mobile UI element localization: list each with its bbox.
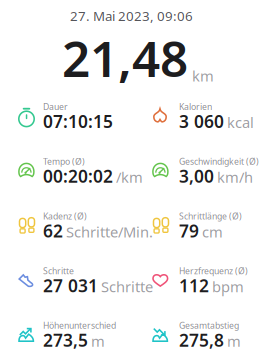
staticText: Schritte (43, 265, 74, 277)
staticText: 273,5 (43, 329, 88, 352)
staticText: 00:20:02 (43, 164, 113, 187)
staticText: 21,48 (62, 25, 188, 90)
staticText: Schritte/Min. (66, 222, 153, 241)
staticText: 27 031 (43, 274, 98, 297)
staticText: Kadenz (Ø) (43, 210, 87, 222)
staticText: kcal (227, 113, 254, 132)
staticText: 27. Mai 2023, 09:06 (70, 7, 193, 25)
staticText: Schrittlänge (Ø) (179, 210, 242, 222)
staticText: 275,8 (179, 329, 224, 352)
staticText: 07:10:15 (43, 110, 113, 133)
staticText: Tempo (Ø) (43, 155, 85, 167)
staticText: 112 (179, 274, 209, 297)
staticText: 62 (43, 219, 63, 242)
staticText: Gesamtabstieg (179, 320, 239, 331)
staticText: km (192, 66, 214, 85)
staticText: Kalorien (179, 101, 212, 113)
staticText: Schritte (101, 277, 153, 296)
staticText: bpm (212, 277, 244, 296)
staticText: 3 060 (179, 110, 224, 133)
staticText: 79 (179, 219, 199, 242)
staticText: cm (202, 222, 223, 241)
staticText: Höhenunterschied (43, 320, 116, 331)
staticText: km/h (217, 167, 253, 187)
staticText: Geschwindigkeit (Ø) (179, 155, 259, 167)
staticText: /km (116, 167, 143, 187)
staticText: m (227, 331, 241, 351)
staticText: m (91, 331, 105, 351)
staticText: 3,00 (179, 164, 214, 187)
staticText: Herzfrequenz (Ø) (179, 265, 248, 277)
staticText: Dauer (43, 101, 68, 113)
